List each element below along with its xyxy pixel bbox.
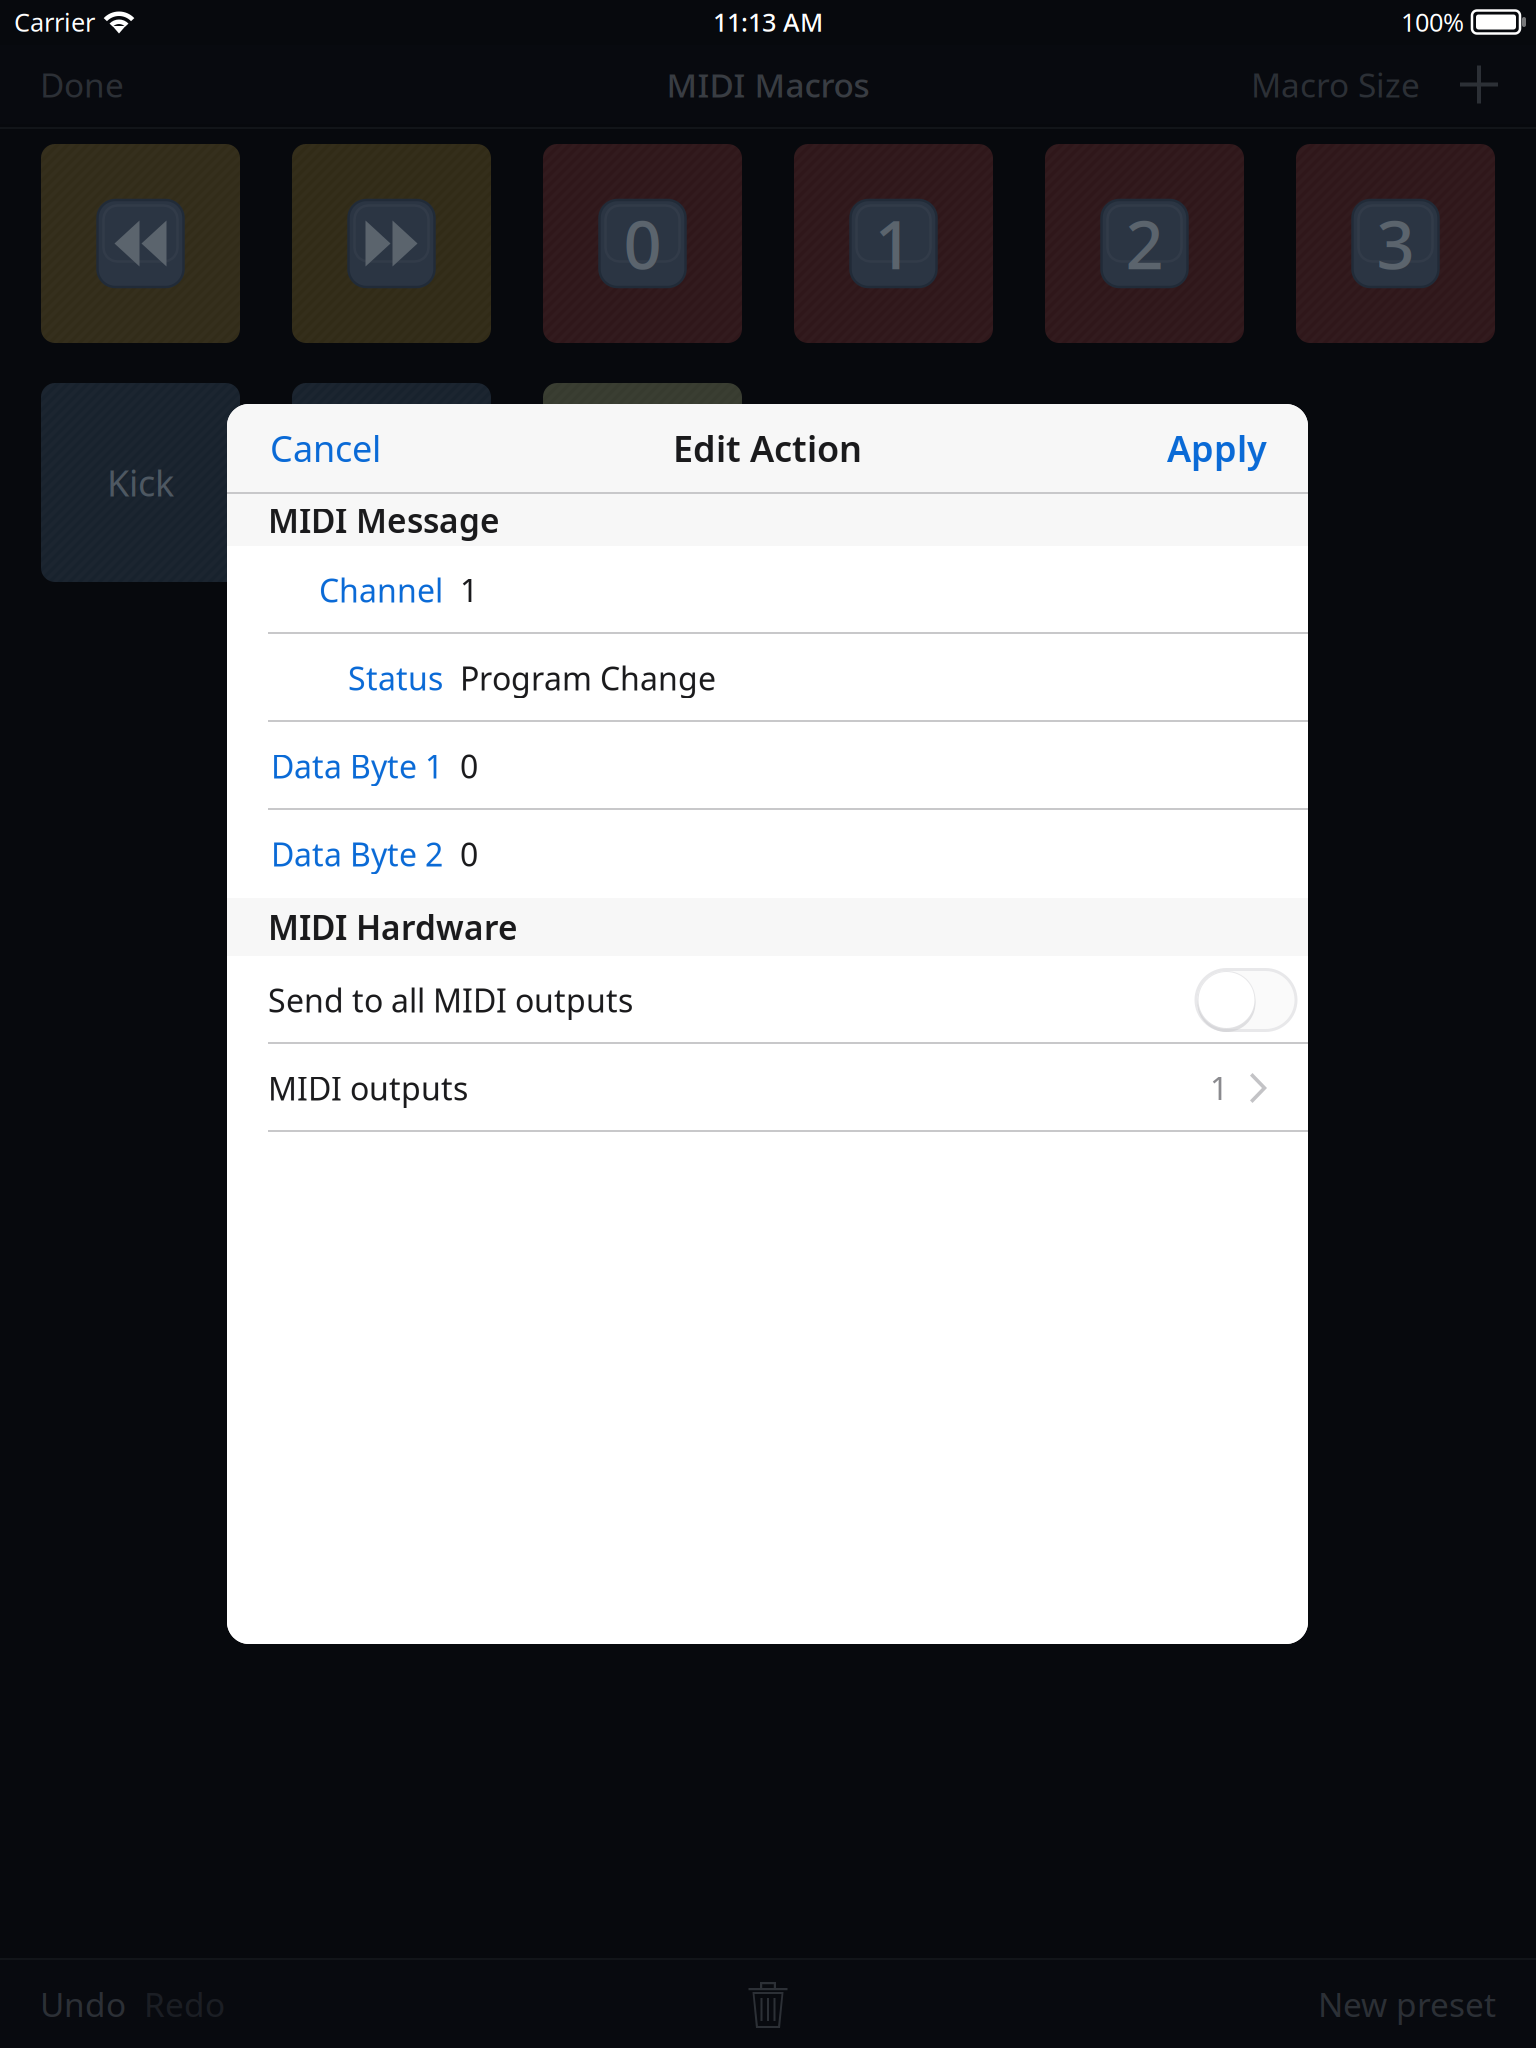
staticText: Data Byte 1 <box>271 745 443 787</box>
button[interactable]: 0 <box>543 144 742 343</box>
button[interactable] <box>543 383 742 582</box>
staticText: Done <box>40 62 124 107</box>
button[interactable]: Macro Size <box>1241 46 1430 123</box>
staticText: 0 <box>460 745 478 787</box>
button[interactable]: 3 <box>1296 144 1495 343</box>
button[interactable]: 1 <box>794 144 993 343</box>
staticText: Kick <box>107 459 174 506</box>
staticText: Edit Action <box>673 424 862 472</box>
staticText: MIDI Hardware <box>268 905 518 949</box>
staticText: Cancel <box>270 424 381 472</box>
staticText: MIDI Message <box>268 498 500 542</box>
staticText: Carrier <box>14 5 95 39</box>
staticText: 1 <box>460 569 478 611</box>
staticText: New preset <box>1318 1982 1496 2026</box>
button[interactable]: Status <box>227 634 1308 722</box>
staticText: 0 <box>623 199 661 288</box>
button[interactable]: MIDI outputs <box>227 1044 1308 1132</box>
button[interactable]: Apply <box>1143 406 1308 490</box>
button[interactable] <box>292 383 491 582</box>
button[interactable]: Data Byte 2 <box>227 810 1308 898</box>
button[interactable]: Add macro <box>1430 49 1536 119</box>
button[interactable]: Kick <box>41 383 240 582</box>
button[interactable]: Undo <box>0 1962 135 2046</box>
staticText: Redo <box>144 1982 225 2026</box>
button[interactable]: Delete <box>734 1964 801 2044</box>
button[interactable]: 2 <box>1045 144 1244 343</box>
staticText: Data Byte 2 <box>271 833 443 875</box>
staticText: 100% <box>1401 5 1464 39</box>
staticText: MIDI Macros <box>666 62 869 107</box>
staticText: MIDI outputs <box>268 1067 468 1109</box>
button[interactable]: Done <box>0 46 148 123</box>
button[interactable] <box>41 144 240 343</box>
staticText: 1 <box>1210 1067 1228 1109</box>
staticText: Undo <box>40 1982 126 2026</box>
staticText: 0 <box>460 833 478 875</box>
button[interactable]: Send to all MIDI outputs <box>227 956 1308 1044</box>
staticText: Apply <box>1167 424 1267 472</box>
staticText: 11:13 AM <box>713 5 823 39</box>
staticText: Macro Size <box>1251 62 1420 107</box>
staticText: 3 <box>1376 199 1414 288</box>
button[interactable] <box>292 144 491 343</box>
staticText: 2 <box>1125 199 1163 288</box>
staticText: Status <box>348 657 443 699</box>
button[interactable]: Channel <box>227 546 1308 634</box>
staticText: Channel <box>319 569 443 611</box>
staticText: Send to all MIDI outputs <box>268 979 633 1021</box>
button[interactable]: New preset <box>1300 1962 1536 2046</box>
button[interactable]: Cancel <box>227 406 405 490</box>
staticText: Program Change <box>460 657 716 699</box>
button[interactable]: Data Byte 1 <box>227 722 1308 810</box>
button[interactable]: Redo <box>135 1962 234 2046</box>
staticText: 1 <box>874 199 912 288</box>
